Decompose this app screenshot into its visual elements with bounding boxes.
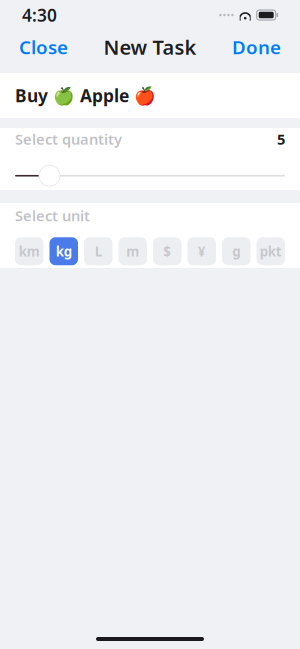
button[interactable]: L <box>84 237 112 265</box>
staticText: g <box>232 242 240 260</box>
staticText: m <box>126 242 139 260</box>
staticText: ¥ <box>198 242 206 260</box>
staticText: pkt <box>260 242 282 260</box>
button[interactable]: km <box>15 237 43 265</box>
staticText: km <box>19 242 40 260</box>
button[interactable]: pkt <box>256 237 285 265</box>
button[interactable]: m <box>118 237 147 265</box>
staticText: kg <box>56 242 72 260</box>
staticText: New Task <box>103 34 196 60</box>
button[interactable]: Close <box>15 29 72 65</box>
staticText: $ <box>163 242 171 260</box>
staticText: Buy 🍏 Apple 🍎 <box>15 84 156 107</box>
button[interactable]: ¥ <box>187 237 216 265</box>
staticText: 5 <box>277 129 285 149</box>
staticText: Select quantity <box>15 129 122 149</box>
staticText: Close <box>19 35 68 59</box>
staticText: L <box>95 242 102 260</box>
button[interactable]: kg <box>49 237 78 265</box>
staticText: Done <box>232 35 281 59</box>
staticText: 4:30 <box>22 3 57 26</box>
button[interactable]: Done <box>228 29 285 65</box>
button[interactable]: $ <box>153 237 181 265</box>
staticText: Select unit <box>15 206 90 225</box>
button[interactable]: g <box>222 237 250 265</box>
